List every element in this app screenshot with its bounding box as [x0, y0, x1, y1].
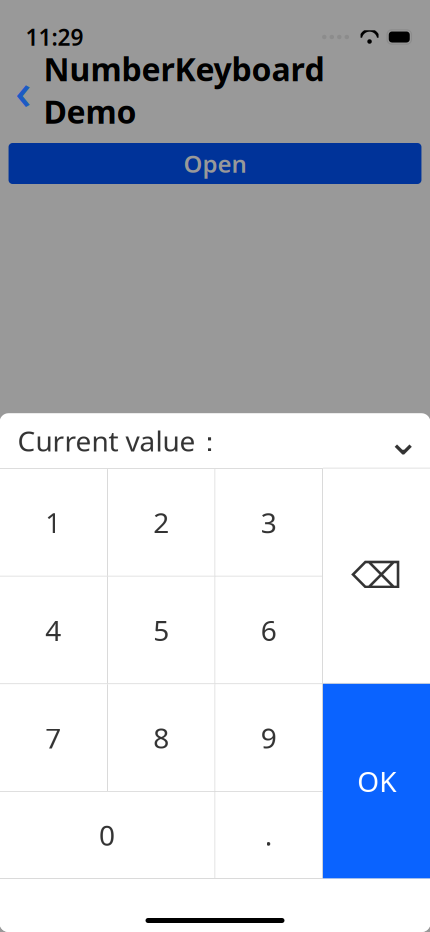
- button[interactable]: 2: [108, 469, 215, 576]
- staticText: 5: [153, 611, 169, 649]
- staticText: 11:29: [26, 22, 84, 52]
- staticText: 7: [45, 719, 61, 756]
- button[interactable]: Open: [9, 143, 421, 184]
- staticText: 8: [153, 719, 169, 756]
- staticText: 6: [261, 611, 277, 649]
- staticText: 3: [261, 504, 277, 541]
- staticText: .: [265, 816, 273, 854]
- staticText: 2: [153, 504, 169, 541]
- button[interactable]: 5: [108, 577, 215, 683]
- button[interactable]: 8: [108, 684, 215, 791]
- staticText: Current value：: [18, 422, 224, 459]
- button[interactable]: 7: [0, 684, 107, 791]
- button[interactable]: 6: [215, 577, 322, 683]
- button[interactable]: 3: [215, 469, 322, 576]
- button[interactable]: .: [215, 792, 322, 878]
- staticText: 9: [261, 719, 277, 756]
- staticText: OK: [357, 763, 396, 800]
- button[interactable]: OK: [323, 684, 430, 879]
- button[interactable]: Hide keyboard: [380, 418, 426, 464]
- button[interactable]: 9: [215, 684, 322, 791]
- button[interactable]: Delete: [323, 469, 430, 683]
- button[interactable]: 4: [0, 577, 107, 683]
- button[interactable]: Back: [4, 67, 44, 113]
- staticText: Open: [183, 148, 246, 179]
- staticText: ‹: [15, 56, 32, 124]
- button[interactable]: 1: [0, 469, 107, 576]
- staticText: ⌫: [351, 555, 402, 596]
- staticText: NumberKeyboard Demo: [44, 47, 325, 132]
- button[interactable]: 0: [0, 792, 215, 878]
- staticText: ⌄: [386, 418, 420, 463]
- staticText: 0: [99, 816, 115, 854]
- staticText: 4: [45, 611, 61, 649]
- staticText: 1: [45, 504, 61, 541]
